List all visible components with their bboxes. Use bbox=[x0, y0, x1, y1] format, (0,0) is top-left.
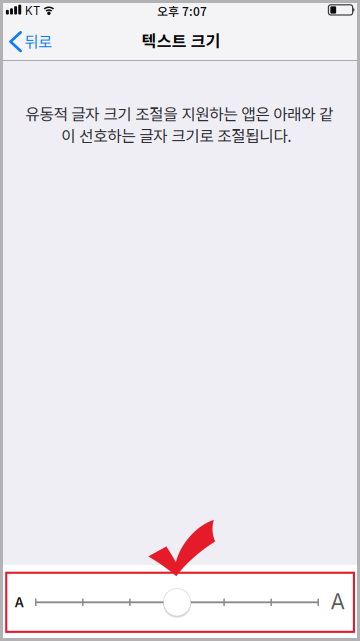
staticText: 유동적 글자 크기 조절을 지원하는 앱은 아래와 같 bbox=[25, 102, 333, 125]
staticText: 뒤로 bbox=[24, 30, 52, 52]
staticText: KT bbox=[25, 4, 40, 18]
staticText: 오후 7:07 bbox=[157, 2, 207, 19]
staticText: A bbox=[14, 595, 24, 610]
staticText: 텍스트 크기 bbox=[142, 29, 221, 52]
staticText: 이 선호하는 글자 크기로 조절됩니다. bbox=[61, 124, 291, 147]
staticText: A bbox=[331, 589, 345, 614]
button[interactable]: Text size bbox=[163, 588, 191, 618]
button[interactable]: 뒤로 bbox=[3, 23, 63, 60]
